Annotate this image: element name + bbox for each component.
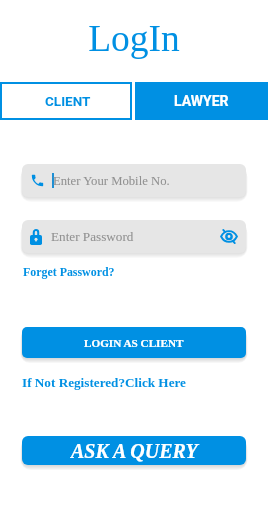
- staticText: Forget Password?: [23, 265, 115, 278]
- button[interactable]: Enter Password: [22, 220, 246, 253]
- button[interactable]: Show password: [220, 229, 238, 244]
- staticText: CLIENT: [45, 93, 91, 109]
- staticText: ASK A QUERY: [71, 440, 198, 462]
- staticText: If Not Registered?Click Here: [22, 375, 186, 390]
- button[interactable]: If Not Registered?Click Here: [22, 375, 186, 390]
- staticText: Enter Password: [51, 229, 134, 244]
- staticText: LAWYER: [174, 93, 229, 109]
- button[interactable]: ASK A QUERY: [22, 436, 246, 465]
- staticText: Enter Your Mobile No.: [53, 174, 170, 188]
- button[interactable]: Enter Your Mobile No.: [22, 164, 246, 197]
- button[interactable]: LAWYER: [135, 82, 268, 120]
- button[interactable]: CLIENT: [0, 82, 132, 120]
- staticText: LogIn: [0, 18, 268, 60]
- button[interactable]: Forget Password?: [23, 265, 115, 278]
- staticText: LOGIN AS CLIENT: [84, 337, 184, 349]
- button[interactable]: LOGIN AS CLIENT: [22, 327, 246, 358]
